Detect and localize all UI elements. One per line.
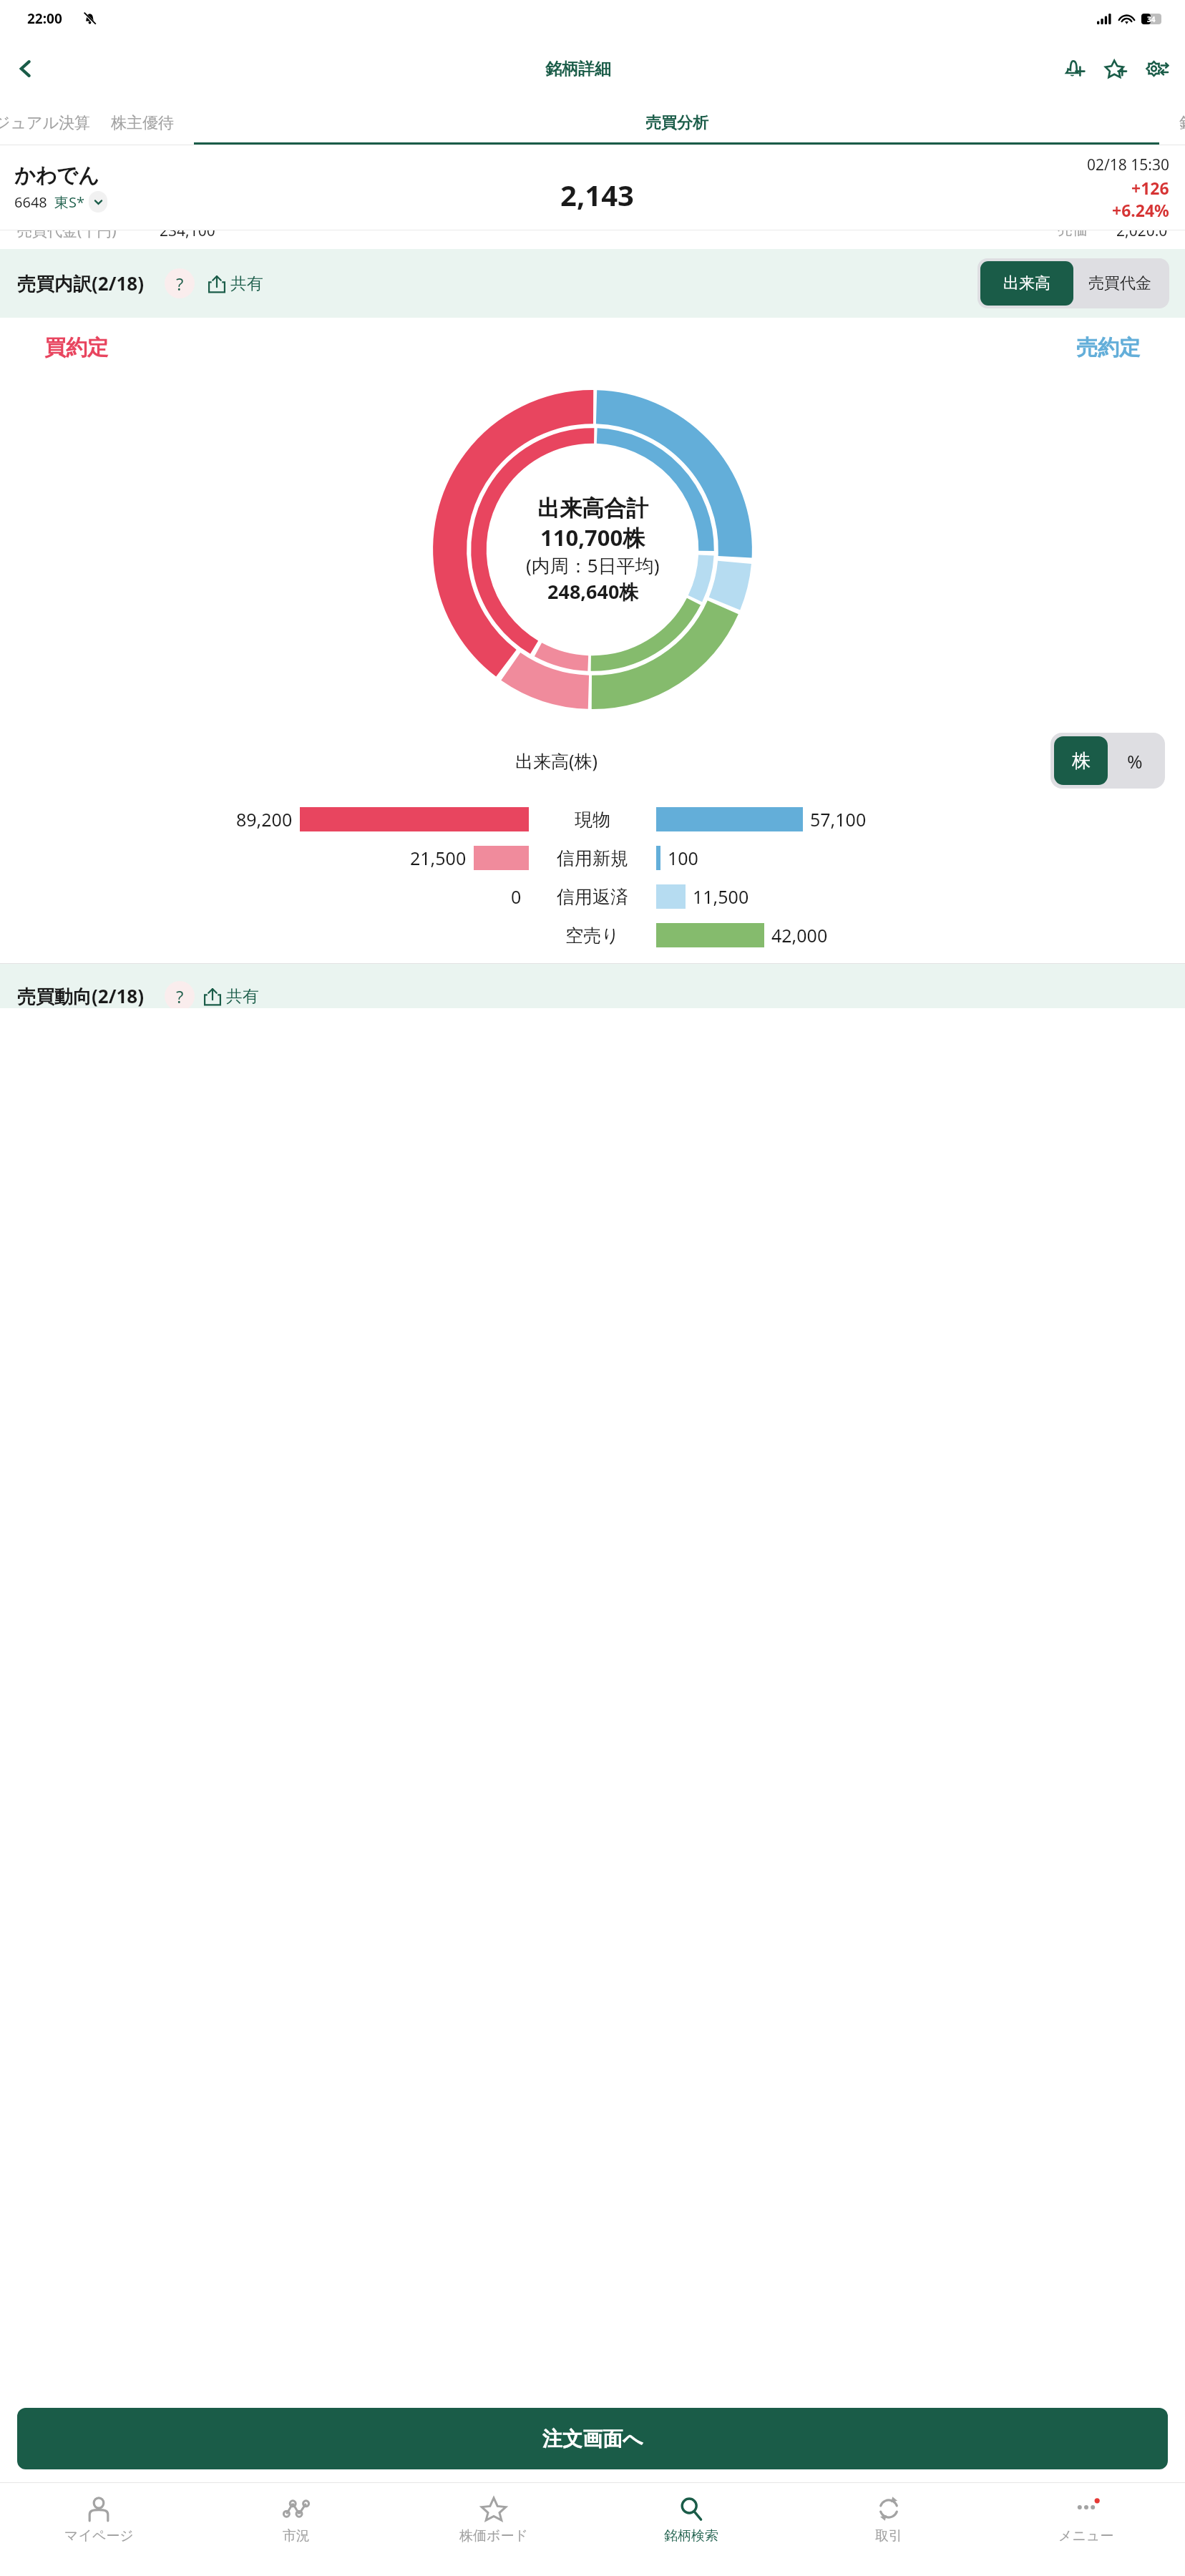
button[interactable]: 共有: [203, 269, 268, 298]
staticText: ジュアル決算: [0, 113, 91, 133]
staticText: 空売り: [565, 924, 620, 947]
staticText: 0: [511, 884, 522, 909]
staticText: 注文画面へ: [542, 2426, 643, 2451]
staticText: 売買代金(千円): [17, 230, 117, 239]
button[interactable]: 注文画面へ: [17, 2408, 1168, 2469]
button[interactable]: 市況: [197, 2483, 395, 2576]
button[interactable]: 出来高: [980, 261, 1073, 306]
staticText: 売買動向(2/18): [17, 983, 145, 1008]
button[interactable]: 銘柄検索: [592, 2483, 790, 2576]
staticText: 2,020.0: [1116, 230, 1168, 239]
button[interactable]: Settings: [1136, 48, 1178, 89]
staticText: 21,500: [410, 846, 467, 870]
button[interactable]: 売買分析: [184, 100, 1169, 145]
staticText: ?: [176, 272, 184, 296]
staticText: 株主優待: [111, 113, 174, 133]
button[interactable]: Expand: [89, 191, 107, 213]
button[interactable]: メニュー: [987, 2483, 1185, 2576]
staticText: 株: [1072, 749, 1091, 773]
staticText: 234,100: [160, 230, 215, 239]
staticText: 100: [668, 846, 698, 870]
staticText: (内周：5日平均): [526, 552, 660, 578]
staticText: 248,640株: [547, 578, 639, 605]
staticText: 57,100: [810, 807, 867, 831]
staticText: ?: [176, 985, 184, 1008]
staticText: 22:00: [27, 9, 62, 28]
button[interactable]: 株: [1054, 736, 1108, 785]
staticText: 11,500: [693, 884, 749, 909]
staticText: 市況: [283, 2527, 310, 2545]
button[interactable]: Back: [6, 49, 46, 89]
staticText: メニュー: [1058, 2527, 1114, 2545]
staticText: 東S*: [54, 192, 84, 212]
button[interactable]: Help: [165, 268, 195, 298]
staticText: 89,200: [236, 807, 293, 831]
button[interactable]: Add favourite: [1095, 48, 1136, 89]
staticText: 現物: [575, 809, 610, 831]
staticText: 売価: [1058, 230, 1088, 239]
staticText: 02/18 15:30: [1087, 155, 1169, 175]
staticText: 売買分析: [645, 113, 708, 133]
staticText: 出来高(株): [515, 748, 598, 773]
staticText: 共有: [226, 986, 259, 1007]
button[interactable]: ジュアル決算: [0, 100, 101, 145]
staticText: 2,143: [560, 175, 634, 214]
staticText: +126: [1131, 177, 1169, 199]
staticText: 株価ボード: [459, 2527, 528, 2545]
staticText: 売買代金: [1088, 273, 1151, 293]
staticText: 6648: [14, 192, 47, 212]
staticText: 売買内訳(2/18): [17, 270, 145, 296]
staticText: %: [1127, 748, 1143, 774]
staticText: 42,000: [771, 923, 828, 947]
staticText: 銘柄詳細: [545, 59, 611, 79]
staticText: マイページ: [64, 2527, 134, 2545]
staticText: 出来高: [1003, 273, 1050, 293]
staticText: 信用新規: [557, 847, 628, 869]
button[interactable]: 売買代金: [1073, 261, 1166, 306]
staticText: 取引: [875, 2527, 902, 2545]
button[interactable]: 取引: [790, 2483, 987, 2576]
button[interactable]: 株価ボード: [395, 2483, 592, 2576]
staticText: +6.24%: [1112, 199, 1169, 221]
staticText: 34: [1147, 14, 1156, 24]
staticText: かわでん: [14, 162, 99, 189]
staticText: 買約定: [44, 334, 109, 361]
staticText: 売約定: [1076, 334, 1141, 361]
staticText: 信用返済: [557, 886, 628, 908]
staticText: 110,700株: [540, 522, 645, 552]
button[interactable]: 株主優待: [101, 100, 184, 145]
button[interactable]: Add alert: [1053, 48, 1095, 89]
staticText: 銘柄検索: [664, 2527, 718, 2545]
staticText: 共有: [230, 273, 263, 294]
button[interactable]: %: [1108, 736, 1161, 785]
button[interactable]: マイページ: [0, 2483, 197, 2576]
staticText: 出来高合計: [537, 494, 648, 522]
